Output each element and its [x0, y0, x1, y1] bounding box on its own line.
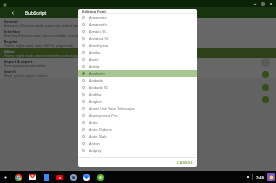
staticText: Anton [89, 141, 100, 146]
staticText: Amethysta [89, 43, 109, 48]
staticText: Search [4, 69, 16, 74]
staticText: Amita [89, 64, 100, 69]
staticText: Word, get list, engine, others [4, 74, 48, 78]
button[interactable]: Amatica SC [78, 35, 197, 42]
button[interactable]: Andada SC [78, 84, 197, 91]
button[interactable]: Antic Slab [78, 133, 197, 140]
button[interactable]: Messages [94, 171, 106, 183]
staticText: Interface [4, 29, 21, 34]
button[interactable]: Amarante [78, 14, 197, 21]
staticText: Angkor [89, 99, 103, 104]
staticText: Amiri [89, 57, 99, 62]
button[interactable]: Angkor [78, 98, 197, 105]
button[interactable]: Antic Didone [78, 126, 197, 133]
staticText: Main key & buttons base, specs scrollabl… [4, 34, 92, 38]
button[interactable]: Amiko [78, 49, 197, 56]
staticText: Autosave, fullscreen mode, paper size, i… [4, 24, 85, 28]
button[interactable]: Import & export [0, 58, 276, 68]
button[interactable]: Annie Use Your Telescope [78, 105, 197, 112]
staticText: Antic [89, 120, 98, 125]
button[interactable]: Photos [80, 171, 92, 183]
button[interactable]: Amaranth [78, 21, 197, 28]
staticText: General [4, 19, 18, 24]
button[interactable]: Amatic SC [78, 28, 197, 35]
button[interactable]: New file [262, 71, 269, 78]
button[interactable]: Amethysta [78, 42, 197, 49]
staticText: Arapey [89, 148, 102, 153]
button[interactable]: Chrome [12, 171, 24, 183]
button[interactable]: Anonymous Pro [78, 112, 197, 119]
button[interactable]: Launcher [1, 173, 10, 182]
staticText: Regular [4, 39, 18, 44]
staticText: Amiko [89, 50, 101, 55]
staticText: Andada SC [89, 85, 109, 90]
staticText: Theme, night mode, auto CRLF fix, page b… [4, 44, 73, 48]
staticText: 7:46 [256, 175, 264, 180]
button[interactable]: Antic [78, 119, 197, 126]
staticText: BubScript [25, 10, 47, 16]
button[interactable]: YouTube [53, 171, 65, 183]
staticText: CANCEL [177, 160, 193, 165]
button[interactable]: Editor [0, 48, 276, 58]
button[interactable]: Arapey [78, 147, 197, 154]
staticText: Amatica SC [89, 36, 109, 41]
staticText: Andika [89, 92, 102, 97]
button[interactable]: Amiri [78, 56, 197, 63]
button[interactable]: Add [261, 58, 270, 67]
button[interactable]: Back [8, 8, 17, 17]
button[interactable]: Interface [0, 28, 276, 38]
staticText: Anonymous Pro [89, 113, 118, 118]
staticText: Pane appearance thereafter [4, 64, 46, 68]
button[interactable]: Andada [78, 77, 197, 84]
button[interactable]: Settings [67, 171, 79, 183]
button[interactable]: Amita [78, 63, 197, 70]
staticText: Amarante [89, 15, 107, 20]
staticText: Editing Font [82, 9, 107, 13]
staticText: Amatic SC [89, 29, 107, 34]
staticText: Annie Use Your Telescope [89, 106, 135, 111]
staticText: Anaheim [89, 71, 105, 76]
staticText: Andada [89, 78, 103, 83]
button[interactable]: Open [262, 96, 269, 103]
button[interactable]: Search [0, 68, 276, 78]
staticText: Antic Slab [89, 134, 107, 139]
staticText: Theme, night mode, word completion, auto… [4, 54, 100, 58]
button[interactable]: New folder [262, 84, 269, 91]
button[interactable]: General [0, 18, 276, 28]
button[interactable]: Anton [78, 140, 197, 147]
staticText: Amaranth [89, 22, 107, 27]
button[interactable]: Anaheim [78, 70, 197, 77]
button[interactable]: Regular [0, 38, 276, 48]
button[interactable]: Docs [40, 171, 52, 183]
button[interactable]: CANCEL [173, 158, 197, 167]
staticText: Editor [4, 49, 15, 54]
staticText: Antic Didone [89, 127, 112, 132]
button[interactable]: Profile [267, 173, 275, 181]
button[interactable]: Gmail [26, 171, 38, 183]
staticText: Import & export [4, 59, 33, 64]
button[interactable]: Andika [78, 91, 197, 98]
